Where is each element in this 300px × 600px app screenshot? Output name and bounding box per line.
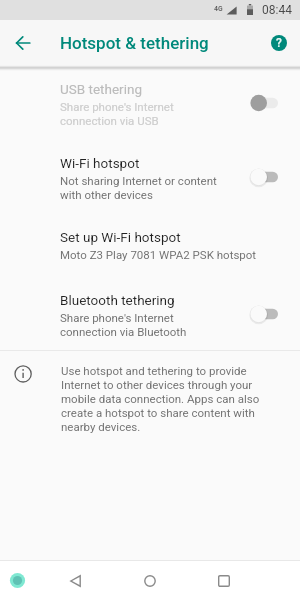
staticText: Share phone's Internet connection via US…	[60, 100, 174, 128]
staticText: 4G	[214, 5, 223, 13]
staticText: Bluetooth tethering	[60, 292, 175, 308]
button[interactable]: Set up Wi-Fi hotspot	[0, 213, 300, 276]
staticText: USB tethering	[60, 81, 143, 97]
staticText: Not sharing Internet or content with oth…	[60, 174, 217, 202]
button[interactable]: Bluetooth tethering	[0, 276, 300, 350]
button[interactable]: Navigate up	[7, 27, 39, 59]
staticText: Set up Wi-Fi hotspot	[60, 229, 181, 245]
button[interactable]: Back	[57, 561, 94, 600]
button[interactable]: Wi-Fi hotspot	[0, 139, 300, 213]
staticText: 08:44	[262, 3, 292, 17]
button[interactable]: Home	[131, 561, 168, 600]
staticText: ?	[276, 36, 282, 50]
button[interactable]: USB tethering	[0, 65, 300, 139]
staticText: Hotspot & tethering	[60, 33, 209, 53]
button[interactable]: Help	[265, 29, 293, 57]
staticText: Use hotspot and tethering to provide Int…	[61, 364, 263, 434]
staticText: Wi-Fi hotspot	[60, 155, 140, 171]
button[interactable]: Recent apps	[205, 561, 242, 600]
staticText: Moto Z3 Play 7081 WPA2 PSK hotspot	[60, 248, 257, 261]
staticText: Share phone's Internet connection via Bl…	[60, 311, 187, 339]
button[interactable]: Assistant	[2, 561, 33, 600]
